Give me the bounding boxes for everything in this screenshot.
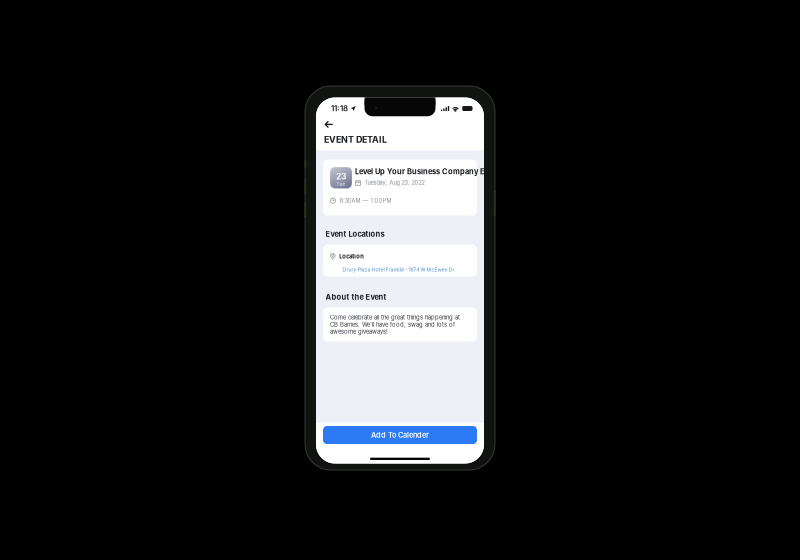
staticText: About the Event [325,292,386,301]
staticText: EVENT DETAIL [324,134,387,145]
staticText: Come celebrate all the great things happ… [330,314,460,335]
staticText: Location [339,253,364,260]
staticText: Add To Calender [371,431,429,439]
staticText: Drury Plaza Hotel Franklin - 1874 W McEw… [342,266,454,273]
staticText: Level Up Your Business Company Eve [355,167,493,176]
button[interactable]: Drury Plaza Hotel Franklin - 1874 W McEw… [330,260,471,273]
staticText: Event Locations [325,229,384,238]
staticText: Tuesday, Aug 23, 2022 [364,179,424,186]
staticText: 11:18 [331,104,348,113]
staticText: 8:30AM — 1:00PM [339,197,391,204]
button[interactable]: Add To Calender [323,426,477,444]
staticText: 23 [336,171,346,181]
button[interactable]: Back [321,118,337,130]
staticText: Tue [336,181,345,187]
